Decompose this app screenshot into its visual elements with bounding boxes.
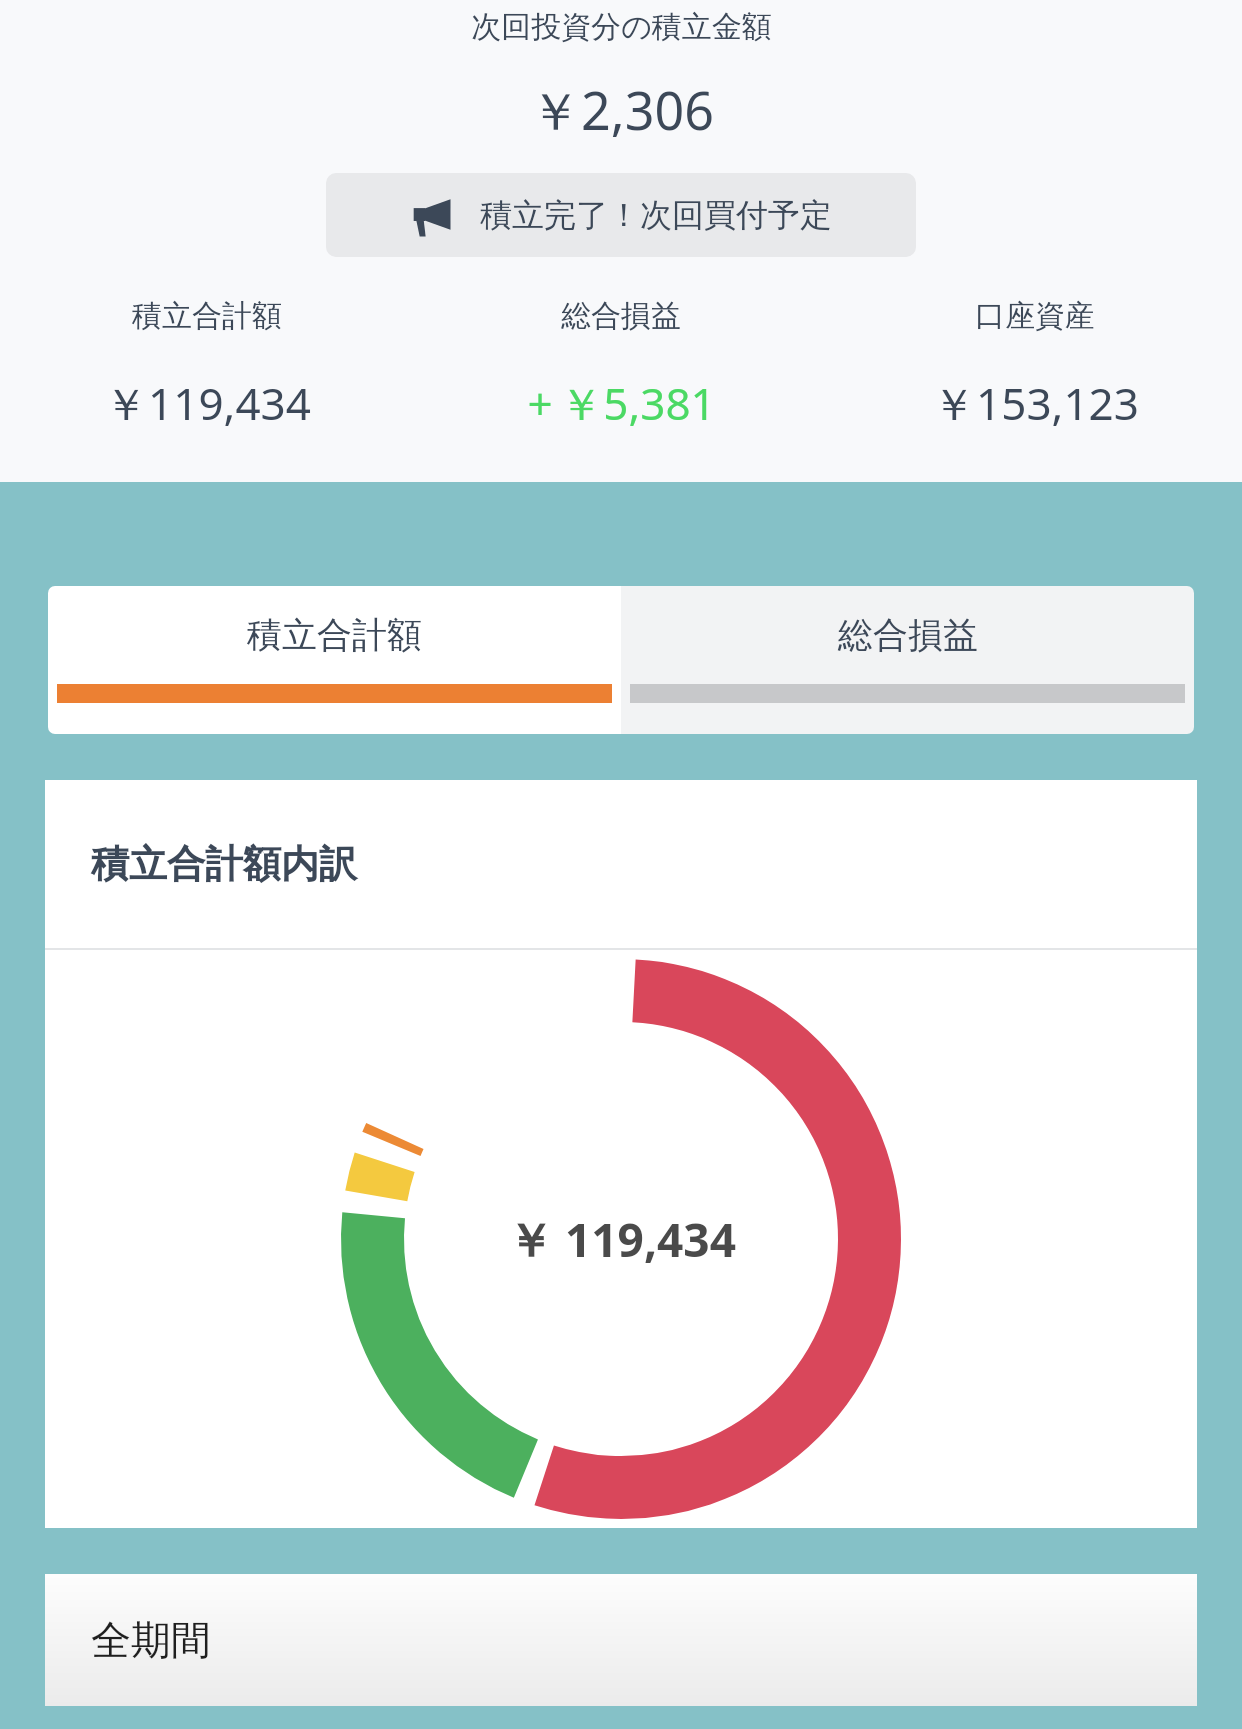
staticText: ￥153,123 <box>932 373 1139 433</box>
staticText: + <box>527 373 553 433</box>
staticText: ￥2,306 <box>529 74 714 145</box>
staticText: ￥5,381 <box>559 373 716 433</box>
staticText: 全期間 <box>91 1615 211 1665</box>
staticText: 総合損益 <box>838 613 978 657</box>
button[interactable]: 総合損益 <box>621 586 1194 734</box>
staticText: 積立合計額 <box>132 297 282 335</box>
staticText: 積立完了！次回買付予定 <box>480 195 832 235</box>
staticText: ￥119,434 <box>104 373 311 433</box>
staticText: 口座資産 <box>975 297 1095 335</box>
button[interactable]: 全期間 <box>45 1574 1197 1706</box>
staticText: 次回投資分の積立金額 <box>471 8 772 46</box>
button[interactable]: お知らせ <box>326 173 916 257</box>
staticText: ￥ 119,434 <box>507 1208 736 1271</box>
button[interactable]: 積立合計額 <box>48 586 621 734</box>
other: お知らせ <box>410 192 456 238</box>
staticText: 積立合計額 <box>247 613 422 657</box>
staticText: 総合損益 <box>561 297 681 335</box>
staticText: 積立合計額内訳 <box>91 840 357 888</box>
